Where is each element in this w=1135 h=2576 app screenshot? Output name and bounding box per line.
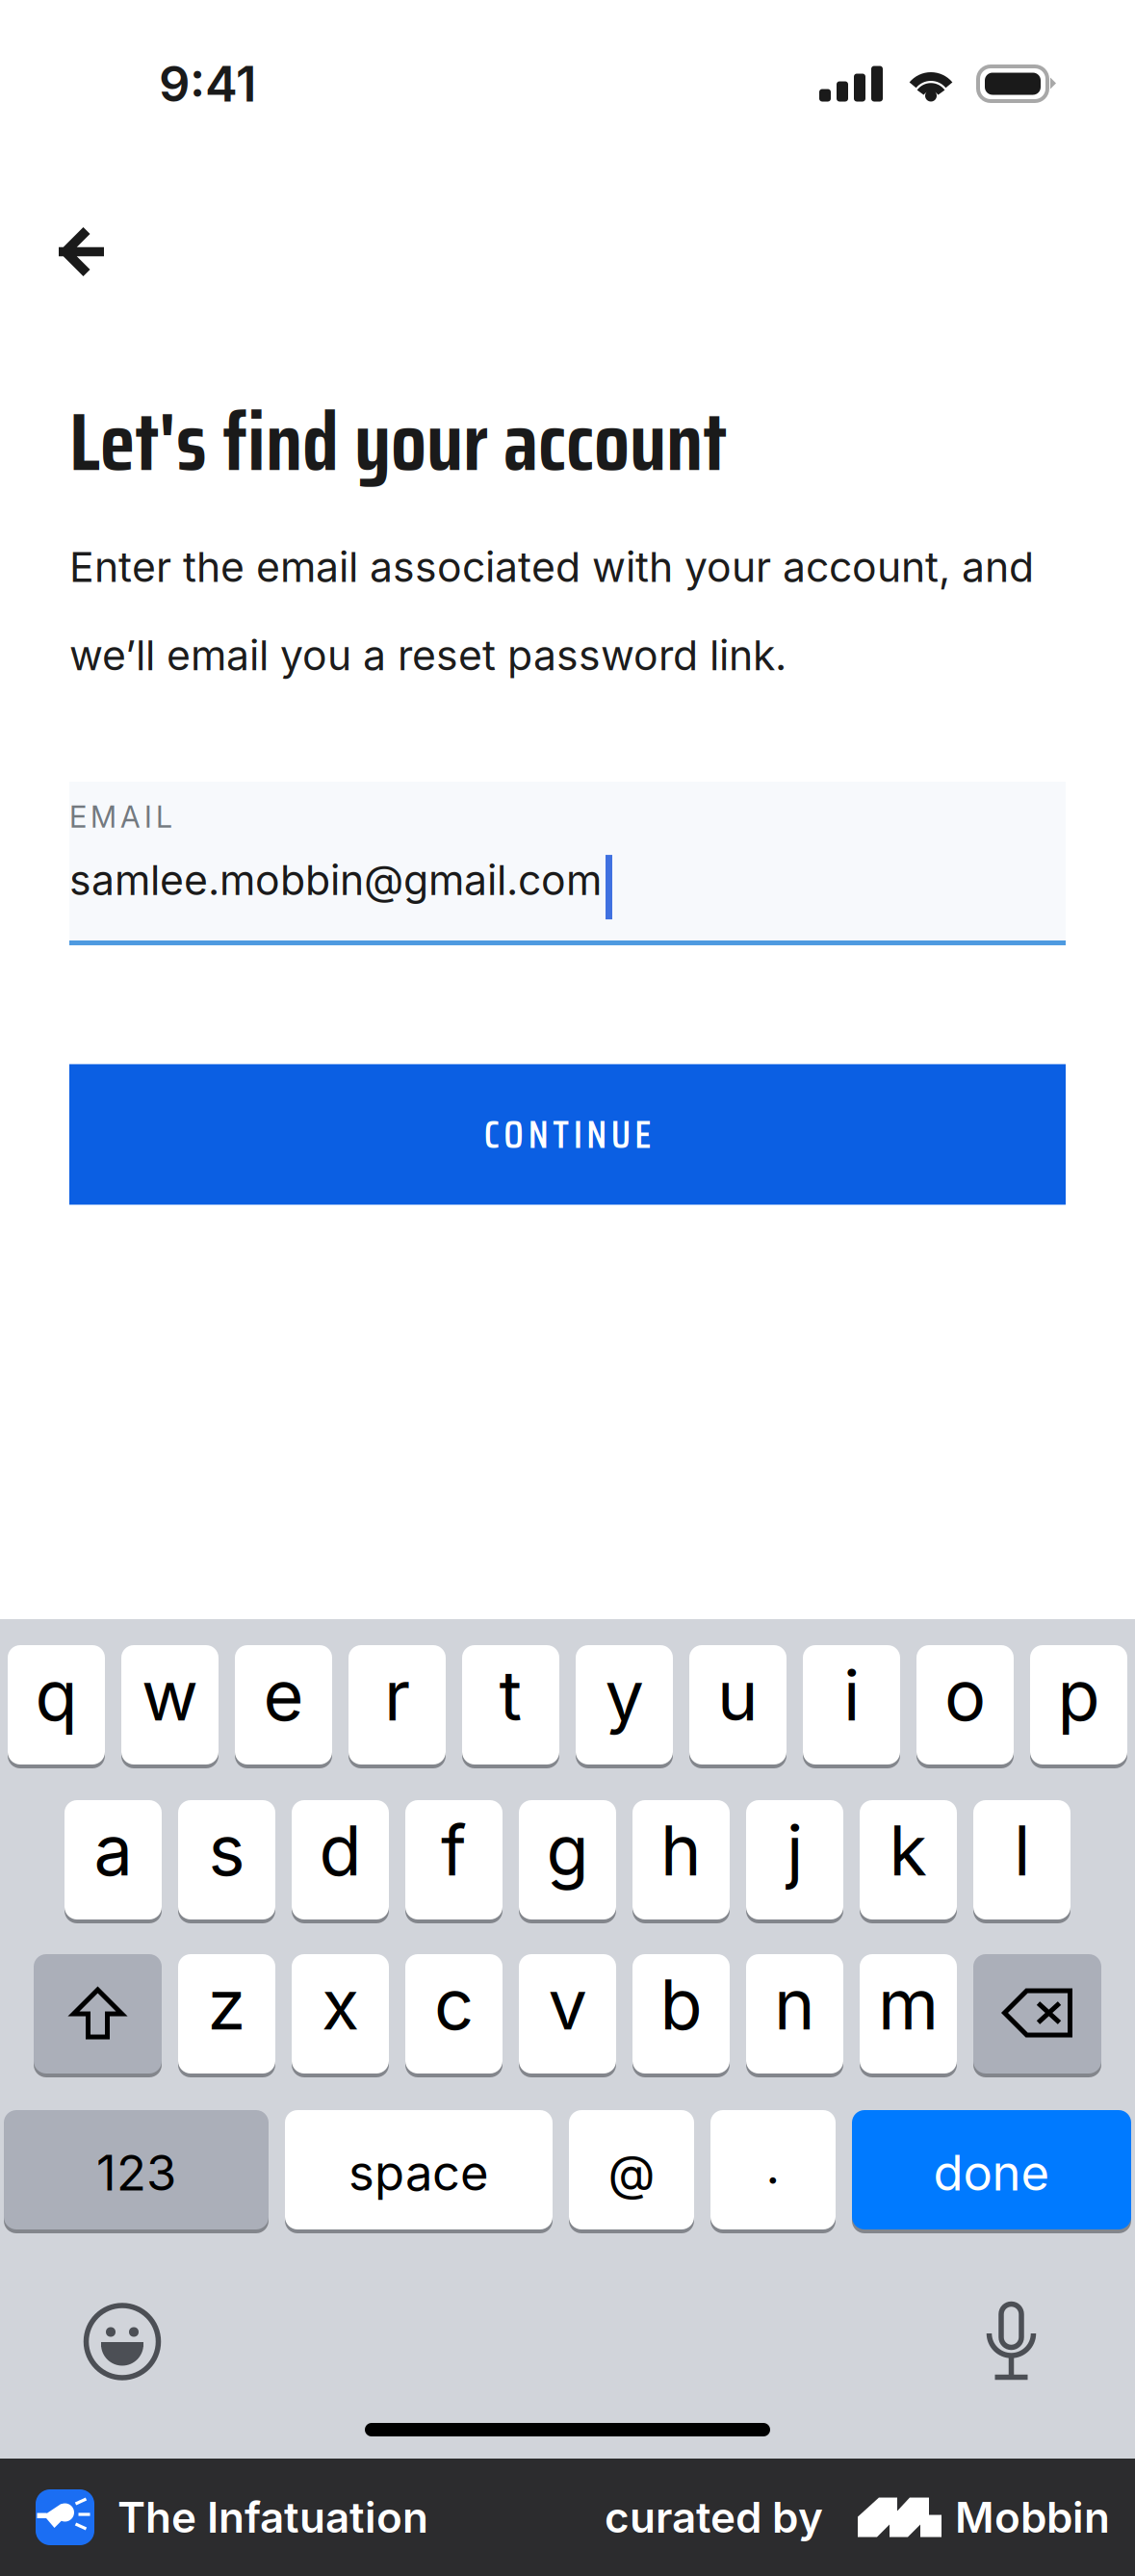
staticText: The Infatuation	[117, 2492, 428, 2543]
button[interactable]: e	[235, 1643, 332, 1766]
staticText: k	[889, 1808, 928, 1892]
staticText: .	[766, 2136, 780, 2195]
staticText: o	[944, 1653, 986, 1737]
staticText: a	[94, 1808, 132, 1892]
button[interactable]: @	[569, 2108, 694, 2231]
button[interactable]: z	[178, 1952, 275, 2075]
staticText: e	[263, 1653, 304, 1737]
button[interactable]: g	[519, 1798, 616, 1921]
staticText: curated by	[605, 2492, 823, 2543]
button[interactable]: EMAIL	[69, 779, 1066, 948]
button[interactable]: d	[292, 1798, 389, 1921]
staticText: x	[322, 1962, 359, 2046]
button[interactable]: q	[8, 1643, 105, 1766]
staticText: f	[441, 1808, 467, 1892]
staticText: g	[546, 1808, 589, 1892]
staticText: u	[717, 1653, 759, 1737]
staticText: Enter the email associated with your acc…	[69, 542, 1034, 680]
staticText: q	[35, 1653, 77, 1737]
staticText: p	[1058, 1653, 1100, 1737]
button[interactable]: p	[1030, 1643, 1127, 1766]
staticText: b	[660, 1962, 702, 2046]
button[interactable]: CONTINUE	[69, 1064, 1066, 1205]
staticText: i	[843, 1653, 860, 1737]
staticText: z	[207, 1962, 246, 2046]
button[interactable]: .	[710, 2108, 836, 2231]
button[interactable]: x	[292, 1952, 389, 2075]
button[interactable]: r	[348, 1643, 446, 1766]
staticText: space	[348, 2143, 489, 2202]
staticText: y	[605, 1653, 644, 1737]
button[interactable]: h	[632, 1798, 730, 1921]
staticText: h	[660, 1808, 702, 1892]
staticText: w	[142, 1653, 198, 1737]
button[interactable]: w	[121, 1643, 219, 1766]
button[interactable]: j	[746, 1798, 843, 1921]
button[interactable]: space	[285, 2108, 553, 2231]
button[interactable]: m	[860, 1952, 957, 2075]
staticText: m	[878, 1962, 939, 2046]
staticText: 123	[96, 2143, 176, 2202]
staticText: n	[774, 1962, 815, 2046]
button[interactable]: i	[803, 1643, 900, 1766]
staticText: 9:41	[159, 54, 256, 113]
button[interactable]: c	[405, 1952, 503, 2075]
staticText: CONTINUE	[484, 1104, 651, 1165]
staticText: l	[1014, 1808, 1030, 1892]
staticText: done	[933, 2143, 1050, 2202]
staticText: t	[499, 1653, 522, 1737]
staticText: samlee.mobbin@gmail.com	[69, 855, 602, 905]
button[interactable]: n	[746, 1952, 843, 2075]
button[interactable]: f	[405, 1798, 503, 1921]
button[interactable]: t	[462, 1643, 559, 1766]
staticText: d	[319, 1808, 361, 1892]
staticText: j	[787, 1808, 803, 1892]
button[interactable]: a	[64, 1798, 162, 1921]
button[interactable]: 123	[4, 2108, 269, 2231]
button[interactable]: o	[916, 1643, 1014, 1766]
staticText: c	[434, 1962, 474, 2046]
staticText: EMAIL	[69, 799, 172, 835]
staticText: Mobbin	[955, 2492, 1110, 2543]
button[interactable]: s	[178, 1798, 275, 1921]
button[interactable]: Dictation	[985, 2301, 1038, 2383]
button[interactable]: Emoji	[83, 2302, 162, 2381]
staticText: r	[384, 1653, 410, 1737]
button[interactable]: l	[973, 1798, 1071, 1921]
button[interactable]: Back	[0, 135, 144, 299]
staticText: Let's find your account	[69, 378, 727, 506]
button[interactable]: done	[852, 2108, 1131, 2231]
button[interactable]: Delete	[973, 1952, 1101, 2075]
button[interactable]: Shift	[34, 1952, 162, 2075]
button[interactable]: y	[576, 1643, 673, 1766]
button[interactable]: b	[632, 1952, 730, 2075]
button[interactable]: u	[689, 1643, 787, 1766]
staticText: v	[548, 1962, 587, 2046]
button[interactable]: v	[519, 1952, 616, 2075]
staticText: s	[208, 1808, 245, 1892]
button[interactable]: k	[860, 1798, 957, 1921]
staticText: @	[608, 2143, 655, 2202]
